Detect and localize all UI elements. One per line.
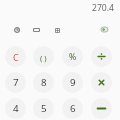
button[interactable]: Calculator [49, 22, 65, 38]
button[interactable]: Toggle [97, 22, 112, 37]
staticText: 7 [13, 76, 19, 89]
button[interactable]: 8 [33, 72, 54, 93]
button[interactable]: History [9, 22, 25, 38]
staticText: 8 [41, 76, 47, 89]
staticText: ( ) [40, 53, 47, 63]
staticText: 6 [70, 102, 76, 115]
button[interactable]: C [5, 46, 26, 67]
button[interactable]: 4 [5, 98, 26, 119]
button[interactable]: 9 [62, 72, 83, 93]
staticText: 270.4 [92, 2, 114, 14]
button[interactable]: Divide [91, 46, 112, 67]
staticText: 9 [70, 76, 76, 89]
button[interactable]: 7 [5, 72, 26, 93]
button[interactable]: Keypad [28, 22, 44, 38]
button[interactable]: 5 [33, 98, 54, 119]
button[interactable]: Multiply [91, 72, 112, 93]
button[interactable]: ( ) [33, 46, 54, 67]
staticText: C [13, 51, 19, 63]
staticText: % [69, 51, 77, 63]
staticText: 5 [41, 102, 47, 115]
button[interactable]: Subtract [91, 98, 112, 119]
staticText: 4 [13, 102, 19, 115]
button[interactable]: 6 [62, 98, 83, 119]
button[interactable]: % [62, 46, 83, 67]
